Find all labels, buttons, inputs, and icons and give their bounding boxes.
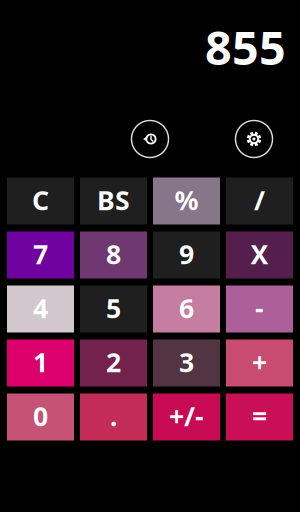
staticText: 7	[33, 236, 48, 272]
staticText: 0	[33, 398, 48, 434]
button[interactable]: C	[7, 177, 74, 224]
staticText: /	[254, 182, 265, 218]
button[interactable]: .	[80, 393, 147, 440]
staticText: +/-	[169, 398, 204, 434]
staticText: +	[252, 344, 267, 380]
staticText: %	[174, 182, 198, 218]
button[interactable]: 5	[80, 285, 147, 332]
button[interactable]: 2	[80, 339, 147, 386]
staticText: 5	[106, 290, 121, 326]
button[interactable]: %	[153, 177, 220, 224]
button[interactable]: Settings	[234, 119, 273, 158]
button[interactable]: 9	[153, 231, 220, 278]
button[interactable]: +/-	[153, 393, 220, 440]
staticText: =	[252, 398, 267, 434]
staticText: 4	[33, 290, 48, 326]
button[interactable]: 4	[7, 285, 74, 332]
staticText: -	[255, 290, 264, 326]
button[interactable]: 8	[80, 231, 147, 278]
staticText: 1	[33, 344, 48, 380]
staticText: .	[110, 398, 117, 434]
staticText: 6	[179, 290, 194, 326]
button[interactable]: History	[130, 119, 169, 158]
staticText: 9	[179, 236, 194, 272]
staticText: 3	[179, 344, 194, 380]
button[interactable]: =	[226, 393, 293, 440]
staticText: 2	[106, 344, 121, 380]
staticText: X	[250, 236, 268, 272]
staticText: BS	[97, 182, 130, 218]
button[interactable]: 6	[153, 285, 220, 332]
button[interactable]: /	[226, 177, 293, 224]
staticText: 8	[106, 236, 121, 272]
button[interactable]: 3	[153, 339, 220, 386]
button[interactable]: 7	[7, 231, 74, 278]
button[interactable]: BS	[80, 177, 147, 224]
button[interactable]: 1	[7, 339, 74, 386]
button[interactable]: +	[226, 339, 293, 386]
button[interactable]: X	[226, 231, 293, 278]
staticText: C	[32, 182, 49, 218]
staticText: 855	[205, 16, 286, 78]
button[interactable]: -	[226, 285, 293, 332]
button[interactable]: 0	[7, 393, 74, 440]
